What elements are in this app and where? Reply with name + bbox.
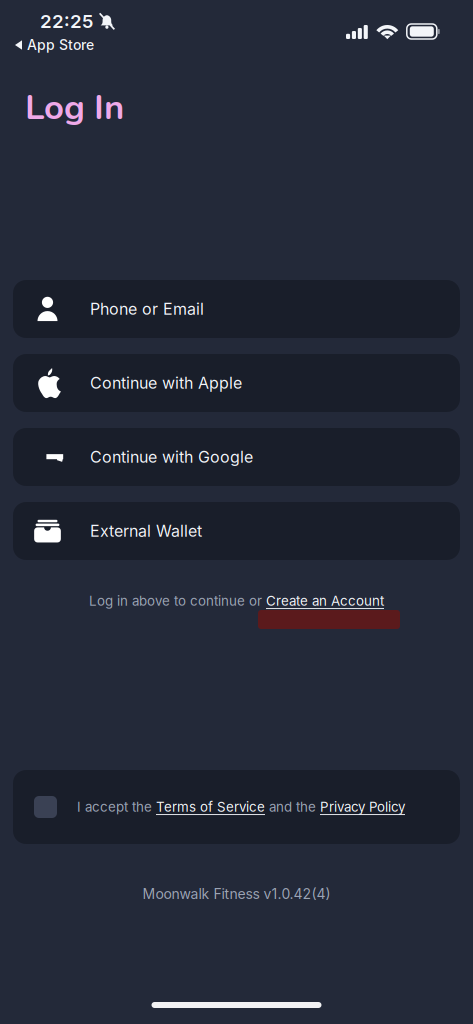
staticText: Continue with Google: [90, 447, 253, 467]
staticText: External Wallet: [90, 521, 202, 541]
staticText: and the: [265, 799, 320, 815]
staticText: Log in above to continue or: [89, 593, 266, 609]
staticText: Phone or Email: [90, 299, 204, 319]
button[interactable]: External Wallet: [13, 502, 460, 560]
staticText: App Store: [27, 36, 94, 53]
button[interactable]: App Store: [0, 38, 94, 52]
button[interactable]: Phone or Email: [13, 280, 460, 338]
button[interactable]: Create an Account: [266, 593, 384, 609]
button[interactable]: Continue with Google: [13, 428, 460, 486]
staticText: Log In: [25, 84, 124, 131]
staticText: 22:25: [40, 10, 93, 33]
button[interactable]: Continue with Apple: [13, 354, 460, 412]
staticText: Continue with Apple: [90, 373, 242, 393]
staticText: Moonwalk Fitness v1.0.42(4): [142, 885, 330, 902]
staticText: Privacy Policy: [320, 799, 405, 815]
staticText: I accept the: [77, 799, 156, 815]
staticText: Create an Account: [266, 593, 384, 609]
button[interactable]: I accept the: [13, 770, 460, 844]
staticText: Terms of Service: [156, 799, 265, 815]
